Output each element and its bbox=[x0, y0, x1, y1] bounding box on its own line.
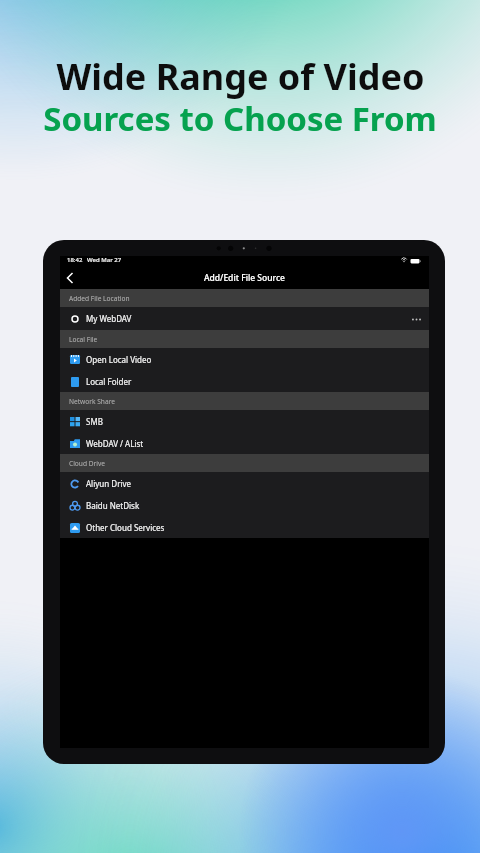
staticText: Added File Location bbox=[69, 294, 130, 303]
staticText: Wide Range of Video bbox=[56, 52, 425, 101]
button[interactable]: Back bbox=[60, 268, 79, 287]
staticText: Sources to Choose From bbox=[43, 96, 437, 141]
button[interactable]: Other Cloud Services bbox=[60, 516, 429, 538]
staticText: Open Local Video bbox=[86, 354, 152, 365]
button[interactable]: More options bbox=[408, 311, 424, 327]
staticText: Baidu NetDisk bbox=[86, 500, 140, 511]
button[interactable]: My WebDAV bbox=[60, 307, 429, 330]
button[interactable]: Local Folder bbox=[60, 370, 429, 392]
button[interactable]: Baidu NetDisk bbox=[60, 494, 429, 516]
staticText: Aliyun Drive bbox=[86, 478, 132, 489]
staticText: 18:42 Wed Mar 27 bbox=[67, 256, 122, 264]
button[interactable]: SMB bbox=[60, 410, 429, 432]
staticText: Network Share bbox=[69, 397, 115, 406]
button[interactable]: Open Local Video bbox=[60, 348, 429, 370]
staticText: Cloud Drive bbox=[69, 459, 106, 468]
staticText: Add/Edit File Source bbox=[204, 272, 285, 284]
staticText: My WebDAV bbox=[86, 313, 132, 324]
staticText: Local Folder bbox=[86, 376, 132, 387]
staticText: SMB bbox=[86, 416, 103, 427]
button[interactable]: WebDAV / AList bbox=[60, 432, 429, 454]
button[interactable]: Aliyun Drive bbox=[60, 472, 429, 494]
staticText: Local File bbox=[69, 335, 98, 344]
staticText: WebDAV / AList bbox=[86, 438, 144, 449]
staticText: Other Cloud Services bbox=[86, 522, 165, 533]
